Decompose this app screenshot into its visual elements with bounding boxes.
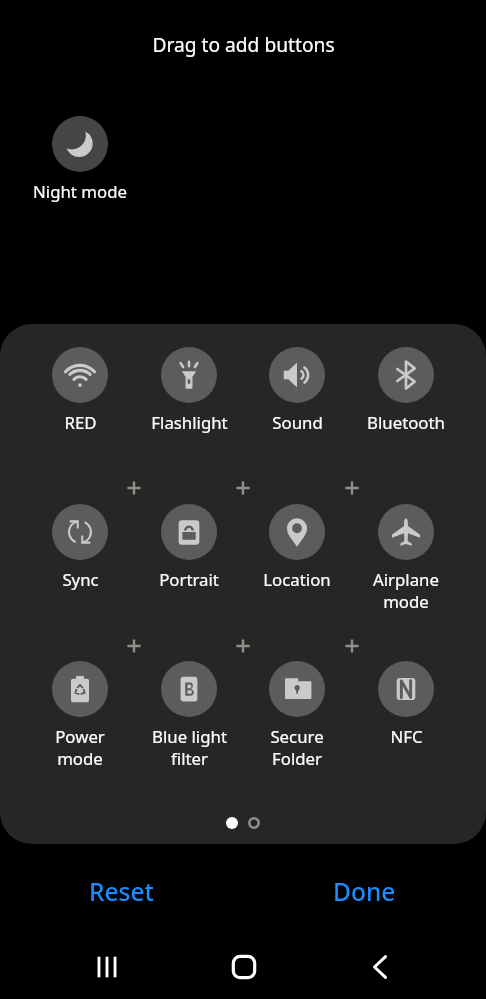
other: Portrait <box>161 504 217 560</box>
staticText: Secure Folder <box>270 725 324 770</box>
button[interactable]: Recent apps <box>81 941 133 993</box>
other: NFC <box>378 661 434 717</box>
button[interactable]: Back <box>354 941 406 993</box>
staticText: Airplane mode <box>373 568 439 613</box>
other: Secure Folder <box>269 661 325 717</box>
staticText: Blue light filter <box>152 725 227 770</box>
button[interactable]: Flashlight <box>135 347 243 434</box>
staticText: Bluetooth <box>367 411 445 434</box>
staticText: Sound <box>272 411 323 434</box>
staticText: Flashlight <box>151 411 228 434</box>
button[interactable]: Reset <box>61 866 182 917</box>
staticText: Done <box>333 875 396 908</box>
other: RED <box>52 347 108 403</box>
button[interactable]: Location <box>243 504 351 591</box>
staticText: Reset <box>89 875 154 908</box>
other: Sound <box>269 347 325 403</box>
other: Airplane mode <box>378 504 434 560</box>
other: Sync <box>52 504 108 560</box>
button[interactable]: Secure Folder <box>243 661 351 770</box>
button[interactable]: Portrait <box>135 504 243 591</box>
button[interactable]: Bluetooth <box>352 347 460 434</box>
button[interactable]: Done <box>305 866 424 917</box>
staticText: Location <box>263 568 331 591</box>
other: Location <box>269 504 325 560</box>
other: Bluetooth <box>378 347 434 403</box>
staticText: NFC <box>390 725 423 748</box>
staticText: Sync <box>62 568 99 591</box>
button[interactable]: RED <box>26 347 134 434</box>
button[interactable]: Sound <box>243 347 351 434</box>
button[interactable]: Night mode <box>26 116 134 203</box>
button[interactable]: Sync <box>26 504 134 591</box>
button[interactable]: Airplane mode <box>352 504 460 613</box>
button[interactable]: Home <box>218 941 270 993</box>
staticText: RED <box>64 411 97 434</box>
staticText: Night mode <box>33 180 127 203</box>
other: Power mode <box>52 661 108 717</box>
other: Blue light filter <box>161 661 217 717</box>
other: Flashlight <box>161 347 217 403</box>
other: Night mode <box>52 116 108 172</box>
button[interactable]: Blue light filter <box>135 661 243 770</box>
button[interactable]: NFC <box>352 661 460 748</box>
button[interactable]: Power mode <box>26 661 134 770</box>
staticText: Portrait <box>159 568 219 591</box>
staticText: Power mode <box>55 725 105 770</box>
staticText: Drag to add buttons <box>152 31 335 57</box>
